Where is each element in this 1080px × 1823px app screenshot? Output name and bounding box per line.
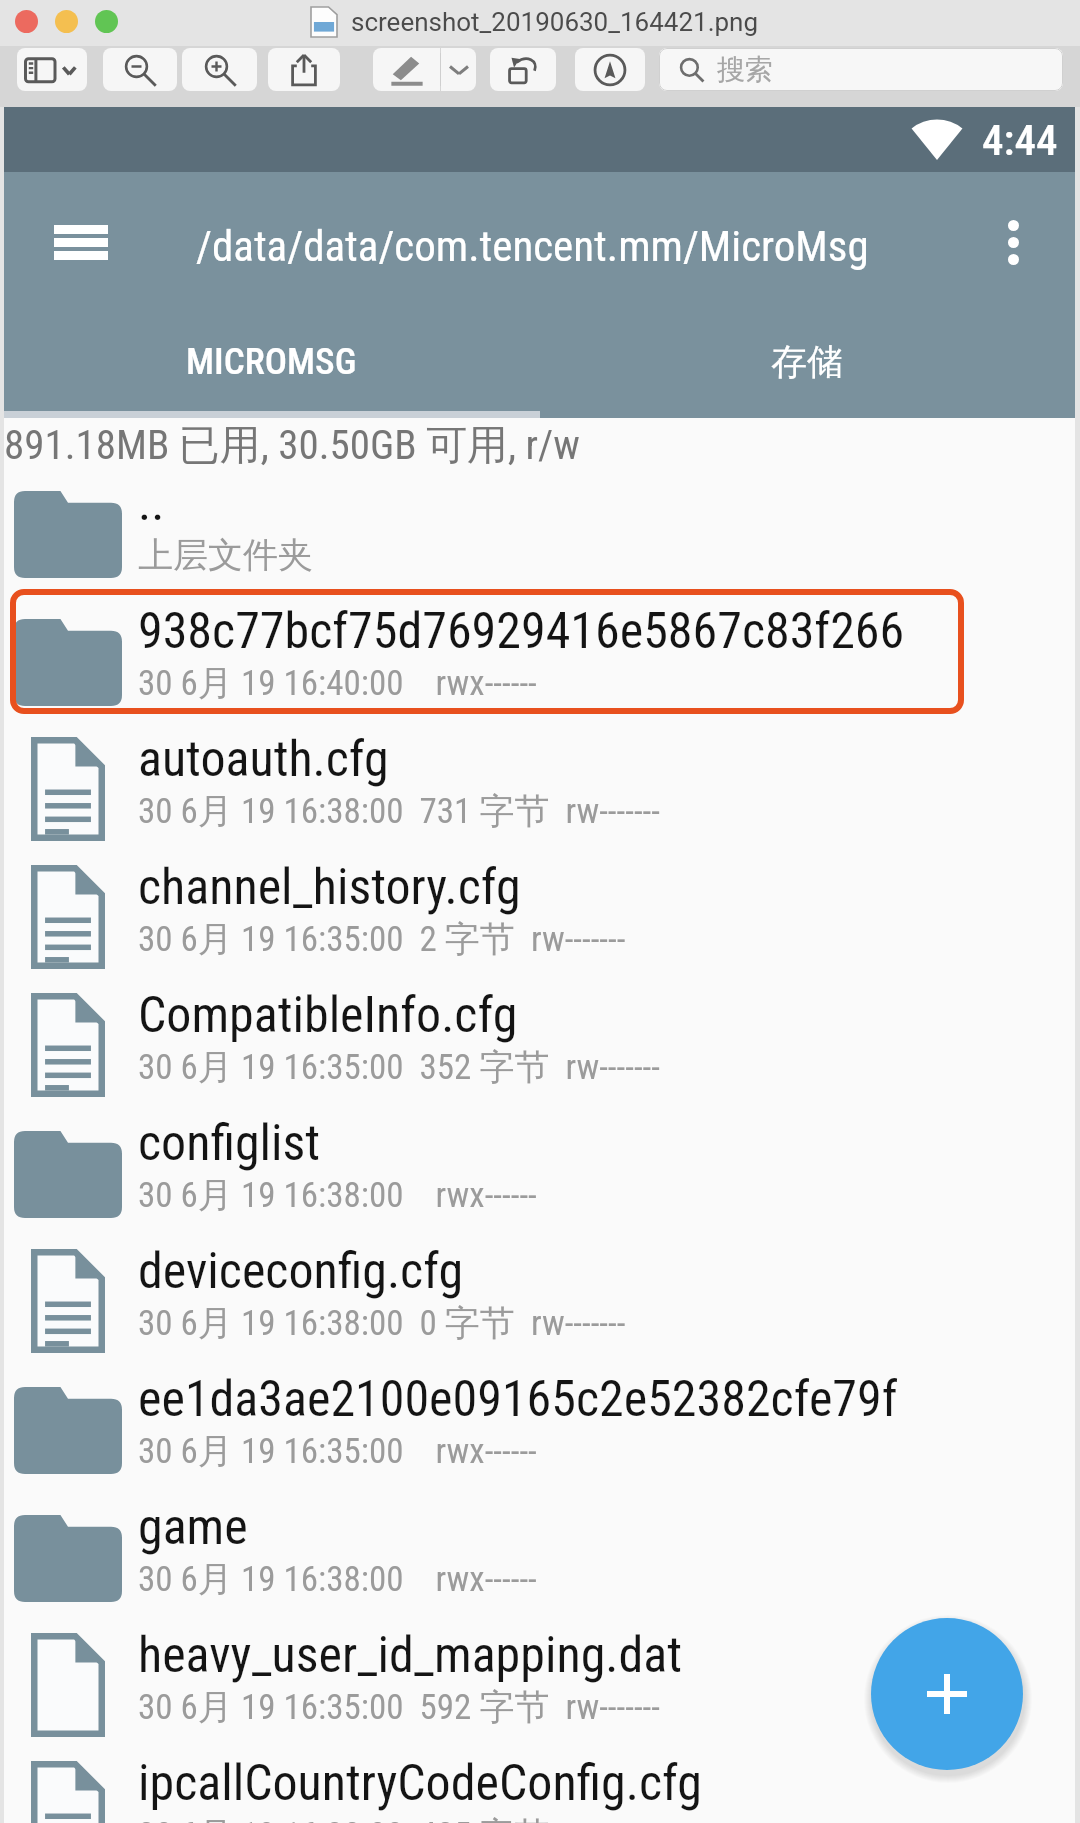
button[interactable]: ipcallCountryCodeConfig.cfg: [4, 1739, 1075, 1823]
staticText: deviceconfig.cfg: [138, 1242, 464, 1301]
staticText: ipcallCountryCodeConfig.cfg: [138, 1754, 702, 1813]
staticText: heavy_user_id_mapping.dat: [138, 1626, 683, 1685]
staticText: 30 6月 19 16:35:00 352 字节 rw-------: [138, 1045, 660, 1089]
staticText: CompatibleInfo.cfg: [138, 986, 518, 1045]
staticText: 30 6月 19 16:40:00 rwx------: [138, 661, 537, 705]
button[interactable]: MICROMSG: [4, 312, 539, 418]
button[interactable]: Window button: [95, 10, 118, 33]
staticText: 30 6月 19 16:38:00 rwx------: [138, 1557, 537, 1601]
button[interactable]: Markup: [373, 48, 440, 91]
button[interactable]: Share: [268, 48, 340, 91]
staticText: 上层文件夹: [138, 533, 313, 577]
button[interactable]: Window button: [15, 10, 38, 33]
staticText: /data/data/com.tencent.mm/MicroMsg: [196, 221, 869, 271]
button[interactable]: configlist: [4, 1099, 1075, 1227]
button[interactable]: Add: [871, 1618, 1023, 1770]
button[interactable]: Annotate: [575, 48, 645, 91]
staticText: 30 6月 19 16:38:00 rwx------: [138, 1173, 537, 1217]
staticText: 搜索: [717, 52, 773, 87]
staticText: channel_history.cfg: [138, 858, 521, 917]
staticText: 891.18MB 已用, 30.50GB 可用, r/w: [4, 420, 580, 472]
staticText: 4:44: [982, 115, 1058, 165]
staticText: ee1da3ae2100e09165c2e52382cfe79f: [138, 1370, 898, 1429]
button[interactable]: 存储: [539, 312, 1075, 418]
button[interactable]: ..: [4, 459, 1075, 587]
button[interactable]: Zoom out: [103, 48, 177, 91]
staticText: MICROMSG: [186, 340, 357, 383]
staticText: screenshot_20190630_164421.png: [351, 7, 759, 37]
button[interactable]: channel_history.cfg: [4, 843, 1075, 971]
button[interactable]: Rotate: [490, 48, 556, 91]
staticText: autoauth.cfg: [138, 730, 389, 789]
button[interactable]: heavy_user_id_mapping.dat: [4, 1611, 1075, 1739]
staticText: configlist: [138, 1114, 321, 1173]
staticText: 30 6月 19 16:38:00 731 字节 rw-------: [138, 789, 660, 833]
button[interactable]: deviceconfig.cfg: [4, 1227, 1075, 1355]
staticText: 存储: [771, 339, 843, 384]
staticText: 30 6月 19 16:35:00 rwx------: [138, 1429, 537, 1473]
button[interactable]: 搜索: [659, 48, 1063, 91]
staticText: 30 6月 19 16:30:00 425 字节 rw-------: [138, 1813, 660, 1823]
button[interactable]: 938c77bcf75d76929416e5867c83f266: [4, 587, 1075, 715]
staticText: ..: [138, 474, 165, 533]
button[interactable]: Markup options: [441, 48, 476, 91]
button[interactable]: More options: [973, 202, 1053, 282]
button[interactable]: game: [4, 1483, 1075, 1611]
staticText: 30 6月 19 16:35:00 2 字节 rw-------: [138, 917, 626, 961]
staticText: game: [138, 1498, 248, 1557]
staticText: 938c77bcf75d76929416e5867c83f266: [138, 602, 905, 661]
button[interactable]: Window button: [55, 10, 78, 33]
button[interactable]: CompatibleInfo.cfg: [4, 971, 1075, 1099]
button[interactable]: Sidebar: [17, 48, 87, 91]
button[interactable]: ee1da3ae2100e09165c2e52382cfe79f: [4, 1355, 1075, 1483]
button[interactable]: autoauth.cfg: [4, 715, 1075, 843]
staticText: 30 6月 19 16:35:00 592 字节 rw-------: [138, 1685, 660, 1729]
button[interactable]: Menu: [33, 194, 129, 290]
button[interactable]: Zoom in: [182, 48, 257, 91]
other: Wifi: [892, 107, 984, 172]
staticText: 30 6月 19 16:38:00 0 字节 rw-------: [138, 1301, 626, 1345]
